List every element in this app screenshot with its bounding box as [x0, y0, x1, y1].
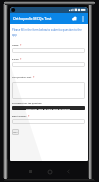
button[interactable]: Home — [44, 166, 55, 177]
button[interactable]: Back — [63, 166, 74, 177]
staticText: Name: — [12, 44, 19, 47]
button[interactable]: Drop files here or click here to upload — [12, 106, 85, 110]
staticText: The Question Text: — [12, 76, 32, 79]
button[interactable]: More options — [79, 13, 87, 24]
staticText: Screenshot for the Question: — [12, 102, 42, 105]
staticText: * — [28, 115, 30, 119]
button[interactable] — [12, 119, 85, 124]
staticText: * — [20, 44, 22, 48]
button[interactable]: Send — [12, 129, 19, 135]
button[interactable]: Share — [70, 13, 79, 24]
staticText: Right Answer: — [12, 115, 27, 118]
staticText: E-mail: — [12, 58, 19, 61]
staticText: Drop files here or click here to upload — [26, 107, 71, 110]
button[interactable] — [12, 48, 85, 53]
staticText: * — [33, 76, 35, 80]
button[interactable] — [12, 62, 85, 67]
button[interactable]: Recents — [25, 166, 36, 177]
staticText: Orthopedic MCQs Test — [13, 16, 52, 21]
staticText: Send — [13, 131, 18, 134]
staticText: * — [20, 58, 22, 62]
button[interactable] — [12, 82, 85, 99]
staticText: Please fill in the form below to submit … — [12, 28, 85, 36]
